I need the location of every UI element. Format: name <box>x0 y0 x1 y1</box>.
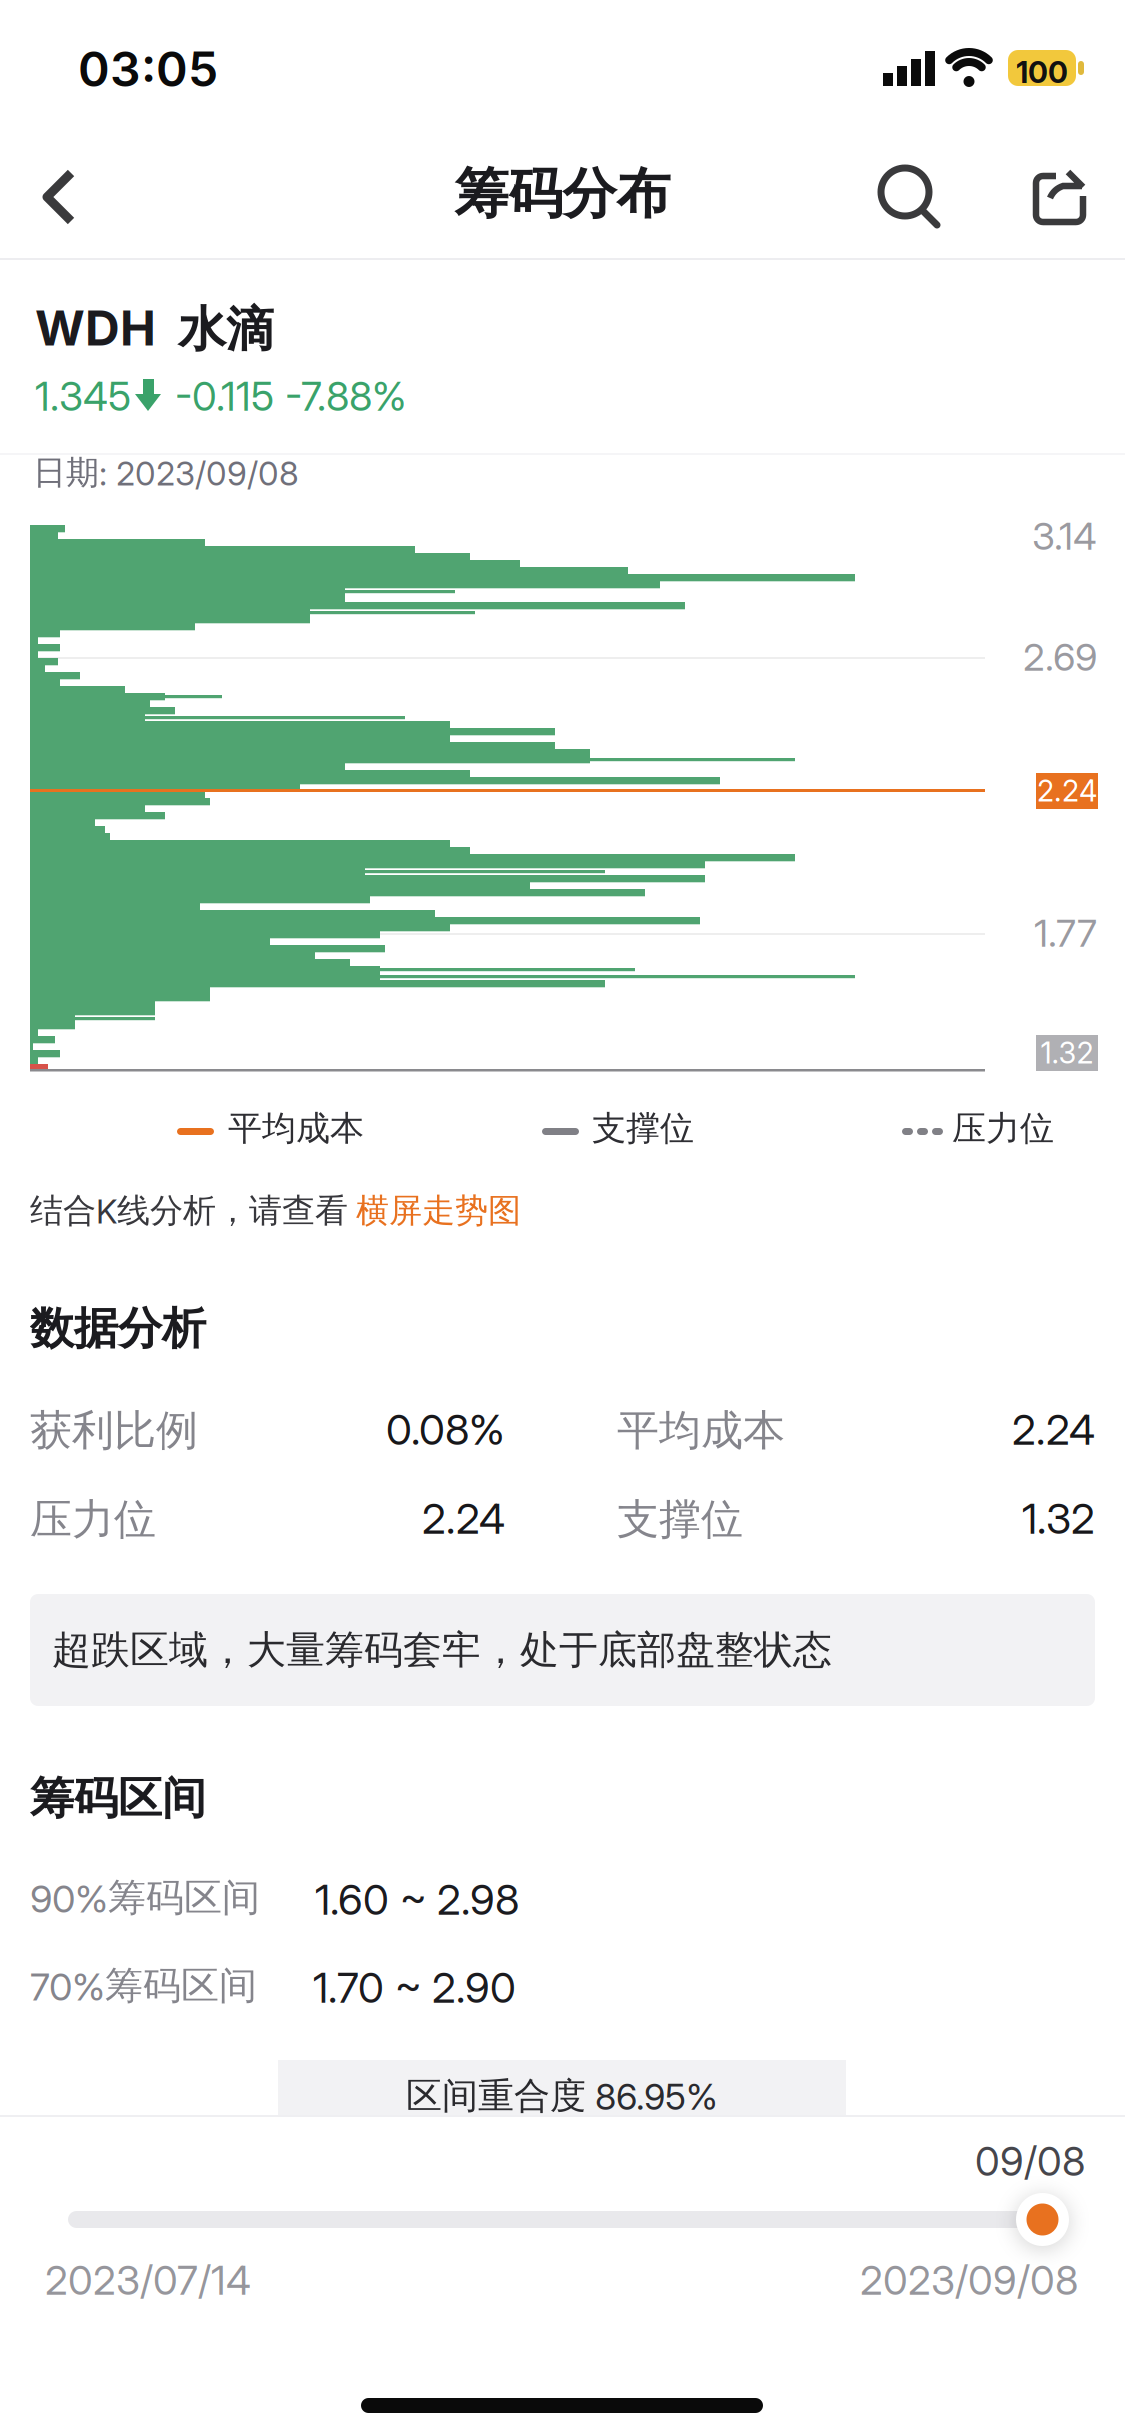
staticText: 横屏走势图 <box>356 1190 521 1232</box>
staticText: 1.345 <box>35 372 131 420</box>
staticText: 日期: 2023/09/08 <box>33 452 299 494</box>
staticText: 2.69 <box>1023 634 1097 680</box>
staticText: 筹码分布 <box>454 160 670 228</box>
staticText: 09/08 <box>975 2137 1085 2185</box>
staticText: 筹码区间 <box>30 1771 206 1826</box>
staticText: 结合K线分析，请查看 <box>30 1190 348 1232</box>
button[interactable] <box>860 147 950 237</box>
button[interactable] <box>1016 2193 1069 2246</box>
button[interactable]: 横屏走势图 <box>348 1190 521 1232</box>
staticText: 平均成本 <box>228 1107 364 1150</box>
button[interactable] <box>20 147 120 247</box>
staticText: 数据分析 <box>30 1301 206 1356</box>
staticText: 平均成本 <box>617 1404 785 1457</box>
staticText: 2.24 <box>1037 773 1097 809</box>
button[interactable] <box>1014 147 1104 237</box>
staticText: 1.70 ~ 2.90 <box>313 1962 516 2013</box>
staticText: 压力位 <box>30 1493 156 1546</box>
staticText: 3.14 <box>1032 513 1097 559</box>
staticText: 1.77 <box>1034 910 1097 956</box>
staticText: 70%筹码区间 <box>30 1962 257 2010</box>
staticText: 支撑位 <box>617 1493 743 1546</box>
staticText: 1.60 ~ 2.98 <box>315 1874 519 1925</box>
staticText: 1.32 <box>1040 1035 1093 1071</box>
staticText: 超跌区域，大量筹码套牢，处于底部盘整状态 <box>52 1625 832 1674</box>
staticText: 压力位 <box>952 1107 1054 1150</box>
staticText: -0.115 <box>175 372 274 420</box>
staticText: 获利比例 <box>30 1404 198 1457</box>
staticText: 90%筹码区间 <box>30 1874 260 1922</box>
staticText: -7.88% <box>285 372 406 420</box>
staticText: 100 <box>1016 54 1068 90</box>
staticText: 支撑位 <box>592 1107 694 1150</box>
staticText: 2.24 <box>1012 1404 1095 1455</box>
staticText: 1.32 <box>1022 1493 1095 1544</box>
staticText: WDH 水滴 <box>35 299 274 360</box>
staticText: 03:05 <box>78 40 218 98</box>
staticText: 2.24 <box>422 1493 505 1544</box>
staticText: 0.08% <box>386 1404 505 1455</box>
staticText: 2023/09/08 <box>860 2256 1078 2304</box>
staticText: 区间重合度 86.95% <box>406 2073 718 2119</box>
staticText: 2023/07/14 <box>45 2256 251 2304</box>
